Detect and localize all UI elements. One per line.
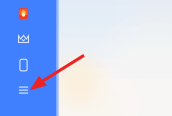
button[interactable]: Devices	[0, 0, 172, 116]
button[interactable]: Premium	[0, 0, 172, 116]
button[interactable]: Menu	[0, 0, 172, 116]
button[interactable]: App	[0, 0, 172, 116]
